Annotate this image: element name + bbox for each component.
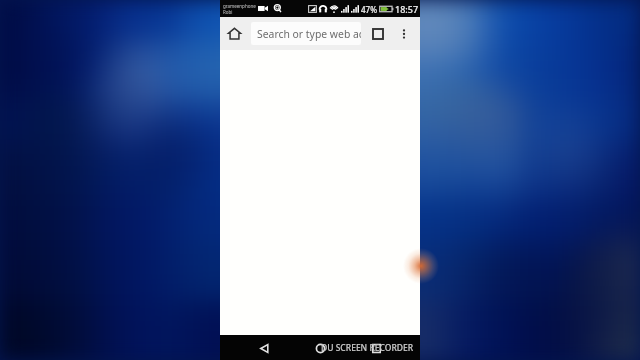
button[interactable]: Home (308, 336, 332, 360)
staticText: grameenphone (223, 3, 256, 9)
button[interactable]: Home (223, 17, 246, 50)
staticText: Robi (223, 9, 233, 15)
staticText: Search or type web address (257, 27, 361, 41)
staticText: 18:57 (395, 3, 419, 15)
button[interactable]: Tabs (366, 17, 390, 50)
button[interactable]: Recents (364, 336, 388, 360)
staticText: DU SCREEN RECORDER (321, 342, 414, 354)
button[interactable]: More options (392, 17, 416, 50)
button[interactable]: Back (252, 336, 276, 360)
button[interactable]: Search or type web address (251, 22, 361, 45)
staticText: 47% (361, 4, 377, 15)
